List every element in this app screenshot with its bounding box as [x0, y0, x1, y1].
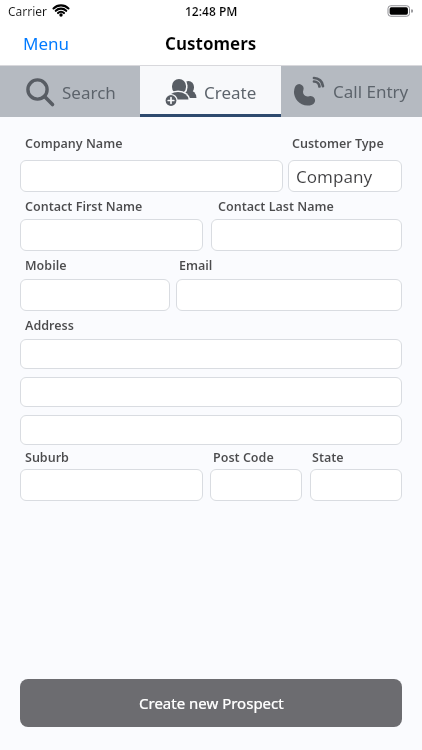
button[interactable]: [210, 469, 302, 501]
staticText: Mobile: [25, 257, 67, 274]
button[interactable]: Search: [0, 66, 140, 117]
button[interactable]: [20, 160, 283, 192]
staticText: Customers: [165, 32, 257, 55]
button[interactable]: [20, 377, 402, 407]
button[interactable]: [310, 469, 402, 501]
button[interactable]: [211, 219, 402, 251]
staticText: Company Name: [25, 135, 123, 152]
staticText: Suburb: [25, 449, 69, 466]
staticText: Create new Prospect: [139, 693, 284, 713]
staticText: Email: [179, 257, 213, 274]
button[interactable]: Create: [140, 66, 281, 117]
staticText: Address: [25, 317, 74, 334]
staticText: Company: [296, 165, 373, 188]
staticText: Call Entry: [333, 80, 409, 103]
button[interactable]: [20, 279, 170, 311]
staticText: Menu: [23, 32, 70, 55]
button[interactable]: [20, 339, 402, 369]
button[interactable]: [20, 219, 203, 251]
staticText: Create: [204, 81, 257, 104]
button[interactable]: [20, 415, 402, 445]
button[interactable]: [176, 279, 402, 311]
button[interactable]: Create new Prospect: [20, 679, 402, 727]
staticText: Carrier: [8, 3, 48, 19]
button[interactable]: Call Entry: [281, 66, 422, 117]
staticText: Contact First Name: [25, 198, 143, 215]
staticText: Search: [62, 81, 116, 104]
staticText: Post Code: [213, 449, 274, 466]
button[interactable]: [20, 469, 203, 501]
staticText: Customer Type: [292, 135, 384, 152]
staticText: 12:48 PM: [185, 3, 238, 19]
button[interactable]: Menu: [23, 32, 70, 55]
staticText: State: [312, 449, 344, 466]
button[interactable]: Company: [288, 160, 402, 192]
staticText: Contact Last Name: [218, 198, 334, 215]
